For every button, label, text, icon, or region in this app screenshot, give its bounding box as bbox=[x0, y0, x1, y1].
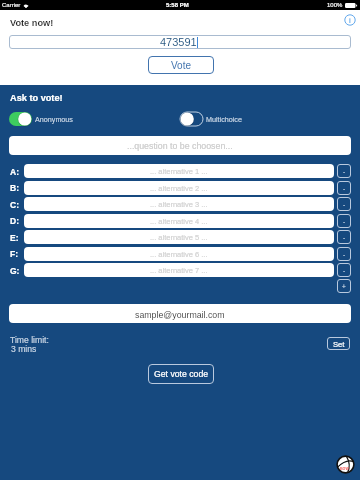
button[interactable]: ... alternative 6 ... bbox=[24, 247, 334, 261]
button[interactable]: 473591 bbox=[9, 35, 351, 49]
staticText: Vote now! bbox=[10, 18, 54, 28]
staticText: Anonymous bbox=[35, 115, 73, 123]
button[interactable]: Add alternative bbox=[337, 279, 351, 293]
button[interactable]: ... alternative 2 ... bbox=[24, 181, 334, 195]
button[interactable]: Vote bbox=[148, 56, 214, 74]
button[interactable]: ... alternative 5 ... bbox=[24, 230, 334, 244]
button[interactable]: Remove alternative 1 bbox=[337, 164, 351, 178]
button[interactable]: sample@yourmail.com bbox=[9, 304, 351, 323]
button[interactable]: Remove alternative 3 bbox=[337, 197, 351, 211]
staticText: ... alternative 4 ... bbox=[150, 217, 208, 225]
staticText: - bbox=[343, 168, 346, 175]
button[interactable]: Remove alternative 4 bbox=[337, 214, 351, 228]
button[interactable]: Remove alternative 6 bbox=[337, 247, 351, 261]
staticText: - bbox=[343, 185, 346, 192]
staticText: ... alternative 6 ... bbox=[150, 250, 208, 258]
staticText: 3 mins bbox=[11, 344, 37, 354]
button[interactable]: ... alternative 7 ... bbox=[24, 263, 334, 277]
button[interactable]: Info bbox=[344, 14, 356, 26]
button[interactable]: Get vote code bbox=[148, 364, 214, 384]
staticText: F: bbox=[10, 249, 19, 258]
staticText: 100% bbox=[327, 2, 343, 9]
button[interactable]: ...question to be choosen... bbox=[9, 136, 351, 155]
button[interactable]: Multichoice bbox=[180, 112, 242, 126]
button[interactable]: ... alternative 3 ... bbox=[24, 197, 334, 211]
staticText: - bbox=[343, 251, 346, 258]
staticText: ... alternative 5 ... bbox=[150, 233, 208, 241]
staticText: + bbox=[342, 283, 346, 290]
staticText: A: bbox=[10, 167, 19, 176]
staticText: Multichoice bbox=[206, 115, 242, 123]
staticText: B: bbox=[10, 183, 19, 192]
staticText: C: bbox=[10, 200, 19, 209]
button[interactable]: Anonymous bbox=[9, 112, 73, 126]
staticText: BOW bbox=[340, 467, 349, 471]
staticText: sample@yourmail.com bbox=[135, 310, 225, 320]
staticText: - bbox=[343, 201, 346, 208]
staticText: - bbox=[343, 267, 346, 274]
staticText: i bbox=[349, 16, 351, 25]
staticText: Vote bbox=[171, 60, 192, 71]
staticText: ... alternative 3 ... bbox=[150, 200, 208, 208]
staticText: ... alternative 2 ... bbox=[150, 184, 208, 192]
button[interactable]: ... alternative 1 ... bbox=[24, 164, 334, 178]
staticText: 473591 bbox=[160, 36, 197, 48]
staticText: G: bbox=[10, 266, 20, 275]
button[interactable]: Remove alternative 2 bbox=[337, 181, 351, 195]
staticText: ...question to be choosen... bbox=[127, 141, 233, 151]
staticText: ... alternative 7 ... bbox=[150, 266, 208, 274]
staticText: 5:58 PM bbox=[166, 2, 189, 9]
staticText: - bbox=[343, 218, 346, 225]
staticText: Time limit: bbox=[10, 335, 49, 345]
staticText: E: bbox=[10, 233, 19, 242]
staticText: ... alternative 1 ... bbox=[150, 167, 208, 175]
button[interactable]: Remove alternative 7 bbox=[337, 263, 351, 277]
button[interactable]: Remove alternative 5 bbox=[337, 230, 351, 244]
button[interactable]: ... alternative 4 ... bbox=[24, 214, 334, 228]
staticText: - bbox=[343, 234, 346, 241]
button[interactable]: Set bbox=[327, 337, 350, 350]
staticText: D: bbox=[10, 216, 19, 225]
staticText: Carrier bbox=[2, 2, 21, 9]
staticText: Ask to vote! bbox=[10, 93, 63, 103]
staticText: Get vote code bbox=[154, 369, 209, 379]
staticText: Set bbox=[333, 340, 345, 348]
